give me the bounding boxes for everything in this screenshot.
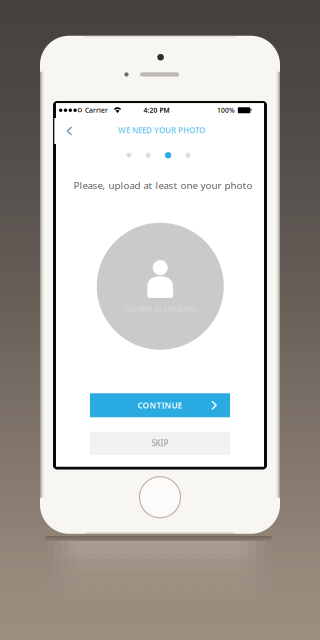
button[interactable]: SKIP [90,432,230,455]
button[interactable]: Back [54,118,84,144]
staticText: WE NEED YOUR PHOTO [118,125,205,135]
staticText: SKIP [151,438,168,448]
staticText: Tap here to add photo [124,304,196,314]
staticText: 4:20 PM [143,106,169,115]
staticText: Carrier [85,106,108,115]
staticText: Please, upload at least one your photo [73,179,252,192]
staticText: 100% [217,106,235,115]
button[interactable]: CONTINUE [90,393,230,417]
staticText: CONTINUE [137,400,182,411]
button[interactable]: Tap here to add photo [97,223,224,350]
